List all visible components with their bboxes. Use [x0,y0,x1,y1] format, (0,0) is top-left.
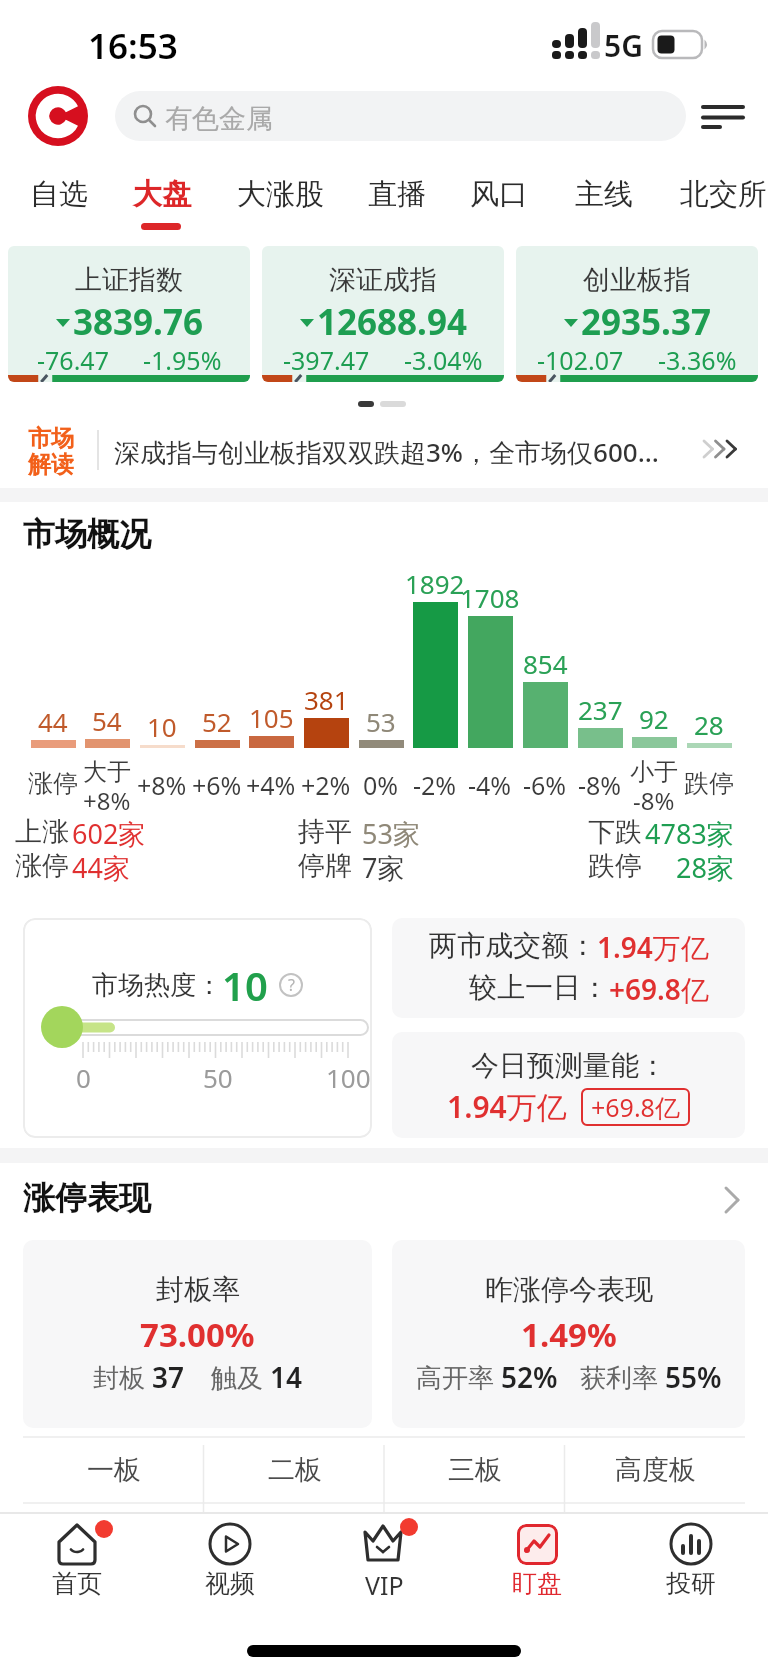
button[interactable]: 二板 [204,1437,385,1503]
button[interactable]: 三板 [384,1437,565,1503]
staticText: 大于 [83,757,131,787]
staticText: 53家 [362,815,420,852]
staticText: 有色金属 [165,102,273,136]
button[interactable] [477,1514,597,1604]
button[interactable]: 市场热度： [23,918,372,1138]
staticText: 一板 [87,1453,141,1487]
staticText: 深成指与创业板指双双跌超3%，全市场仅600... [114,434,659,470]
staticText: 10 [222,958,268,1012]
button[interactable]: 直播 [360,168,418,232]
staticText: 主线 [575,176,633,213]
button[interactable] [720,1186,744,1216]
staticText: 三板 [448,1453,502,1487]
staticText: 7家 [362,849,405,886]
staticText: 封板 [93,1359,152,1395]
staticText: 触及 [211,1359,270,1395]
staticText: 100 [326,1060,371,1095]
staticText: -102.07 [537,343,624,377]
staticText: 381 [304,682,349,717]
button[interactable]: 高度板 [565,1437,746,1503]
staticText: 37 [152,1358,185,1396]
staticText: 跌停 [588,849,642,883]
staticText: 3839.76 [73,298,203,346]
staticText: 直播 [368,176,426,213]
staticText: 涨停 [28,768,78,799]
button[interactable]: 市场 解读 [0,412,768,488]
button[interactable]: 大盘 [125,168,183,232]
staticText: 0 [76,1060,91,1095]
staticText: 44 [38,704,68,739]
staticText: 今日预测量能： [471,1048,667,1083]
staticText: 北交所 [680,176,767,213]
staticText: 上涨 [15,815,69,849]
staticText: 市场热度： [92,969,222,1002]
button[interactable]: 深证成指 [262,246,504,382]
button[interactable]: 创业板指 [516,246,758,382]
staticText: 28家 [676,849,734,886]
staticText: 5G [604,25,643,66]
button[interactable] [28,86,88,146]
staticText: 92 [639,701,669,736]
staticText: -397.47 [283,343,370,377]
button[interactable]: 自选 [22,168,80,232]
staticText: 237 [578,692,623,727]
staticText: 深证成指 [329,263,437,297]
staticText: 下跌 [588,815,642,849]
staticText: 涨停表现 [23,1178,151,1218]
staticText: +69.8亿 [609,970,709,1008]
button[interactable]: 封板率 [23,1240,372,1428]
button[interactable]: 主线 [567,168,625,232]
staticText: 1.94万亿 [597,928,709,966]
staticText: 首页 [52,1568,102,1599]
staticText: 52 [202,704,232,739]
button[interactable]: 两市成交额： [392,918,745,1018]
staticText: +8% [137,768,187,802]
staticText: 10 [147,709,177,744]
staticText: 昨涨停今表现 [485,1272,653,1307]
staticText: -3.36% [658,343,737,377]
button[interactable] [631,1514,751,1604]
staticText: 较上一日： [469,970,609,1005]
staticText: 12688.94 [317,298,467,346]
staticText: 封板率 [156,1272,240,1307]
staticText: 自选 [30,176,88,213]
staticText: +4% [246,768,296,802]
staticText: 2935.37 [581,298,711,346]
staticText: 52% [501,1358,558,1396]
button[interactable] [324,1514,444,1604]
button[interactable]: 上证指数 [8,246,250,382]
button[interactable] [17,1514,137,1604]
staticText: 投研 [666,1568,716,1599]
staticText: ? [288,974,295,996]
staticText: -1.95% [143,343,222,377]
button[interactable] [700,100,746,132]
button[interactable]: 风口 [462,168,520,232]
staticText: 602家 [72,815,146,852]
staticText: VIP [365,1568,404,1602]
staticText: 市场概况 [23,514,151,554]
staticText: 涨停 [15,849,69,883]
staticText: 16:53 [88,22,178,70]
staticText: 73.00% [140,1312,255,1357]
button[interactable]: 北交所 [672,168,759,232]
staticText: 停牌 [298,849,352,883]
staticText: 54 [92,703,122,738]
staticText: 4783家 [645,815,734,852]
button[interactable]: 昨涨停今表现 [392,1240,745,1428]
staticText: 55% [665,1358,722,1396]
staticText: 53 [366,704,396,739]
staticText: -6% [523,768,567,802]
button[interactable]: 有色金属 [115,91,686,141]
button[interactable] [170,1514,290,1604]
staticText: 大盘 [133,176,191,213]
staticText: 14 [270,1358,303,1396]
staticText: -4% [468,768,512,802]
staticText: 风口 [470,176,528,213]
staticText: 1.94万亿 [447,1086,567,1127]
button[interactable]: 一板 [23,1437,204,1503]
staticText: -76.47 [37,343,109,377]
button[interactable]: 大涨股 [229,168,316,232]
staticText: 两市成交额： [429,928,597,963]
staticText: 持平 [298,815,352,849]
button[interactable]: 今日预测量能： [392,1032,745,1138]
